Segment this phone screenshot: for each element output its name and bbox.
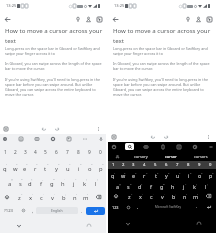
button[interactable]: x: [25, 190, 36, 204]
button[interactable]: Microsoft SwiftKey: [142, 201, 193, 213]
button[interactable]: Keyboard tool 2: [33, 135, 41, 143]
button[interactable]: Keyboard tool 1: [17, 135, 25, 143]
button[interactable]: Clipboard: [1, 124, 10, 133]
button[interactable]: English: [36, 207, 78, 214]
button[interactable]: cursor: [156, 151, 186, 161]
button[interactable]: u: [62, 160, 73, 175]
button[interactable]: m: [80, 190, 91, 204]
button[interactable]: 8: [183, 161, 194, 169]
button[interactable]: SwiftKey tool 2: [141, 143, 150, 150]
button[interactable]: Enter: [201, 201, 216, 213]
button[interactable]: u: [172, 169, 183, 180]
button[interactable]: More options: [94, 124, 103, 133]
button[interactable]: Emoji: [18, 204, 29, 217]
button[interactable]: Keyboard tool 5: [81, 135, 89, 143]
button[interactable]: 4: [30, 144, 40, 160]
button[interactable]: y: [161, 169, 172, 180]
button[interactable]: j: [68, 175, 79, 190]
button[interactable]: 5: [40, 144, 51, 160]
button[interactable]: 1: [108, 161, 118, 169]
button[interactable]: Share: [83, 14, 94, 25]
button[interactable]: l: [90, 175, 101, 190]
button[interactable]: z: [124, 190, 135, 201]
button[interactable]: 7: [62, 144, 73, 160]
button[interactable]: 3: [20, 144, 30, 160]
button[interactable]: 6: [51, 144, 62, 160]
button[interactable]: a: [5, 175, 15, 190]
button[interactable]: p: [95, 160, 106, 175]
button[interactable]: d: [134, 180, 145, 190]
button[interactable]: Recents: [194, 219, 203, 228]
button[interactable]: .: [193, 201, 201, 213]
button[interactable]: a: [113, 180, 123, 190]
button[interactable]: 2: [118, 161, 128, 169]
button[interactable]: 9: [84, 144, 95, 160]
button[interactable]: c: [36, 190, 47, 204]
button[interactable]: 5: [150, 161, 161, 169]
button[interactable]: Undo: [39, 124, 48, 133]
button[interactable]: v: [157, 190, 168, 201]
button[interactable]: v: [47, 190, 58, 204]
button[interactable]: h: [167, 180, 178, 190]
button[interactable]: SwiftKey tool 4: [174, 143, 183, 150]
button[interactable]: Backspace: [201, 190, 216, 201]
button[interactable]: 3: [128, 161, 139, 169]
button[interactable]: Redo: [161, 132, 170, 141]
button[interactable]: ,: [29, 204, 36, 217]
button[interactable]: d: [25, 175, 35, 190]
button[interactable]: g: [156, 180, 167, 190]
button[interactable]: Pin: [182, 14, 193, 25]
button[interactable]: 4: [139, 161, 150, 169]
button[interactable]: s: [123, 180, 134, 190]
button[interactable]: c: [146, 190, 157, 201]
button[interactable]: SwiftKey tool 0: [109, 143, 118, 150]
button[interactable]: Back: [2, 14, 13, 25]
button[interactable]: i: [73, 160, 84, 175]
button[interactable]: t: [150, 169, 161, 180]
button[interactable]: Shift: [0, 190, 14, 204]
button[interactable]: e: [128, 169, 139, 180]
button[interactable]: l: [200, 180, 211, 190]
button[interactable]: Pin: [72, 14, 83, 25]
button[interactable]: 2: [10, 144, 20, 160]
button[interactable]: b: [58, 190, 69, 204]
button[interactable]: k: [79, 175, 90, 190]
button[interactable]: Hide keyboard: [14, 221, 23, 230]
button[interactable]: Hide keyboard: [123, 219, 132, 228]
button[interactable]: 1: [0, 144, 10, 160]
button[interactable]: cursors: [186, 151, 216, 161]
button[interactable]: ,: [134, 201, 142, 213]
button[interactable]: Back: [110, 14, 121, 25]
button[interactable]: Undo: [148, 132, 157, 141]
button[interactable]: o: [84, 160, 95, 175]
button[interactable]: 0: [205, 161, 216, 169]
button[interactable]: SwiftKey tool 5: [190, 143, 199, 150]
button[interactable]: Shift: [108, 190, 124, 201]
button[interactable]: 123: [108, 201, 123, 213]
button[interactable]: i: [183, 169, 194, 180]
button[interactable]: w: [118, 169, 128, 180]
button[interactable]: Keyboard tool 4: [65, 135, 73, 143]
button[interactable]: Keyboard tool 0: [1, 135, 9, 143]
button[interactable]: Keyboard tool 3: [49, 135, 57, 143]
button[interactable]: s: [15, 175, 25, 190]
button[interactable]: Save: [94, 14, 105, 25]
button[interactable]: 6: [161, 161, 172, 169]
button[interactable]: w: [10, 160, 20, 175]
button[interactable]: n: [179, 190, 190, 201]
button[interactable]: k: [189, 180, 200, 190]
button[interactable]: 8: [73, 144, 84, 160]
button[interactable]: Recents: [84, 221, 93, 230]
button[interactable]: Keyboard tool 6: [97, 135, 105, 143]
button[interactable]: x: [135, 190, 146, 201]
button[interactable]: ?123: [0, 204, 18, 217]
button[interactable]: h: [57, 175, 68, 190]
button[interactable]: q: [0, 160, 10, 175]
button[interactable]: Redo: [52, 124, 61, 133]
button[interactable]: j: [178, 180, 189, 190]
button[interactable]: 0: [95, 144, 106, 160]
button[interactable]: g: [46, 175, 57, 190]
button[interactable]: e: [20, 160, 30, 175]
button[interactable]: m: [190, 190, 201, 201]
button[interactable]: Enter: [86, 207, 105, 215]
